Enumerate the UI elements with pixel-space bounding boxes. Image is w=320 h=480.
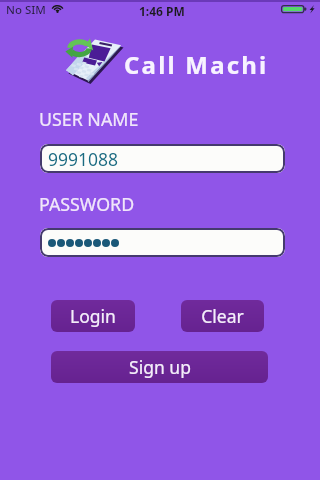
button[interactable]: 9991088 (40, 144, 285, 173)
staticText: No SIM (6, 2, 46, 18)
button[interactable]: Clear (181, 300, 264, 332)
staticText: Login (70, 304, 116, 328)
button[interactable]: Sign up (51, 351, 268, 383)
staticText: PASSWORD (39, 192, 135, 216)
staticText: USER NAME (39, 107, 139, 131)
button[interactable]: Login (51, 300, 135, 332)
button[interactable] (40, 228, 285, 257)
staticText: Sign up (129, 355, 191, 379)
staticText: Call Machi (124, 48, 269, 81)
staticText: 1:46 PM (139, 3, 185, 19)
staticText: Clear (201, 304, 244, 328)
staticText: 9991088 (48, 147, 119, 171)
